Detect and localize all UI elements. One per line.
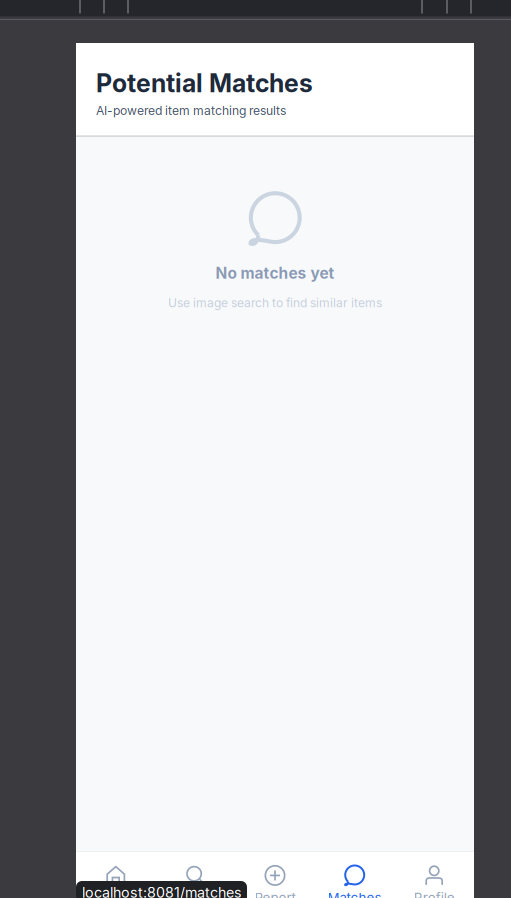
staticText: Matches xyxy=(328,890,382,898)
staticText: localhost:8081/matches xyxy=(82,884,242,898)
staticText: Use image search to find similar items xyxy=(168,296,382,310)
button[interactable]: Matches xyxy=(315,844,394,898)
button[interactable]: Search xyxy=(156,844,235,898)
button[interactable]: Home xyxy=(76,844,156,898)
button[interactable]: Profile xyxy=(394,844,474,898)
button[interactable]: Report xyxy=(235,844,315,898)
staticText: Profile xyxy=(414,890,455,898)
staticText: Report xyxy=(254,890,295,898)
staticText: Search xyxy=(173,890,218,898)
staticText: Potential Matches xyxy=(96,68,313,98)
staticText: No matches yet xyxy=(215,264,334,282)
staticText: AI-powered item matching results xyxy=(96,103,286,118)
staticText: Home xyxy=(97,890,135,898)
